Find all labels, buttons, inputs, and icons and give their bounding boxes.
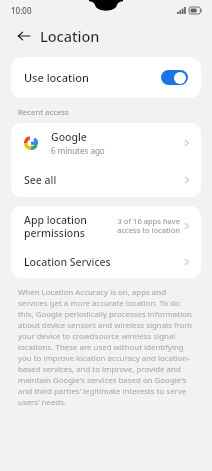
button[interactable]: App location permissions [11, 206, 201, 246]
button[interactable]: See all [11, 163, 201, 197]
staticText: Use location [24, 70, 161, 85]
button[interactable]: Google [11, 123, 201, 163]
staticText: Google [51, 130, 87, 144]
button[interactable]: Use location toggle [161, 70, 188, 85]
staticText: Location Services [24, 255, 184, 269]
staticText: App location permissions [24, 213, 87, 240]
button[interactable]: Location Services [11, 246, 201, 278]
staticText: When Location Accuracy is on, apps and s… [18, 287, 196, 408]
staticText: 3 of 16 apps have access to location [93, 216, 180, 236]
staticText: See all [24, 173, 184, 187]
staticText: 6 minutes ago [51, 145, 105, 156]
staticText: Location [40, 26, 100, 46]
staticText: 10:00 [11, 5, 32, 16]
button[interactable]: Use location [11, 57, 201, 98]
button[interactable]: Back [15, 27, 33, 45]
staticText: Recent access [18, 107, 69, 118]
